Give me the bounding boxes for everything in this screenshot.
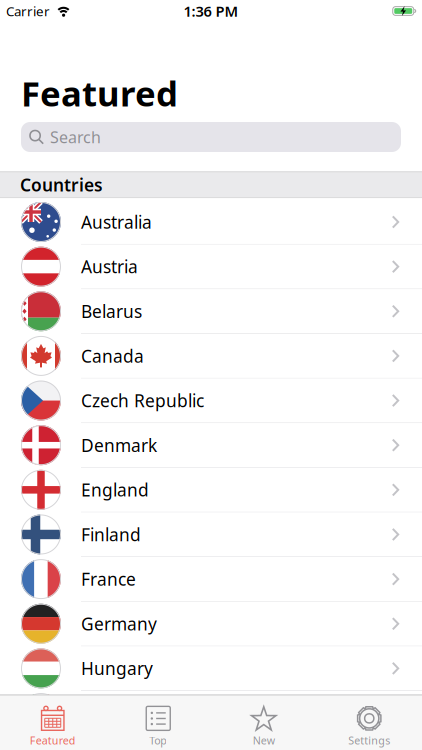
staticText: Carrier bbox=[6, 2, 50, 20]
staticText: France bbox=[81, 568, 136, 591]
button[interactable]: Czech Republic bbox=[0, 379, 422, 423]
staticText: Search bbox=[50, 126, 101, 148]
staticText: Czech Republic bbox=[81, 389, 204, 412]
button[interactable]: Germany bbox=[0, 602, 422, 646]
button[interactable]: Settings bbox=[316, 695, 422, 748]
button[interactable]: Top bbox=[105, 695, 211, 748]
staticText: Denmark bbox=[81, 434, 157, 457]
button[interactable]: England bbox=[0, 468, 422, 512]
staticText: 1:36 PM bbox=[183, 1, 238, 21]
button[interactable]: New bbox=[211, 695, 316, 748]
staticText: Australia bbox=[81, 210, 152, 233]
staticText: Belarus bbox=[81, 300, 142, 323]
button[interactable]: France bbox=[0, 557, 422, 602]
button[interactable]: Canada bbox=[0, 334, 422, 378]
button[interactable]: Finland bbox=[0, 512, 422, 557]
staticText: Featured bbox=[30, 733, 76, 748]
staticText: Austria bbox=[81, 255, 138, 278]
staticText: Top bbox=[149, 733, 167, 748]
button[interactable]: Featured bbox=[0, 695, 105, 748]
button[interactable]: Iceland bbox=[0, 691, 422, 736]
staticText: Settings bbox=[348, 733, 390, 748]
staticText: Hungary bbox=[81, 657, 153, 680]
staticText: Countries bbox=[20, 173, 103, 196]
staticText: Finland bbox=[81, 523, 141, 546]
button[interactable]: Austria bbox=[0, 245, 422, 289]
staticText: Featured bbox=[21, 70, 178, 116]
staticText: Germany bbox=[81, 612, 157, 635]
button[interactable]: Search bbox=[0, 122, 401, 152]
button[interactable]: Belarus bbox=[0, 289, 422, 334]
staticText: New bbox=[253, 733, 275, 748]
button[interactable]: Denmark bbox=[0, 423, 422, 468]
button[interactable]: Australia bbox=[0, 200, 422, 245]
staticText: England bbox=[81, 478, 149, 501]
button[interactable]: Hungary bbox=[0, 646, 422, 691]
staticText: Canada bbox=[81, 344, 144, 367]
